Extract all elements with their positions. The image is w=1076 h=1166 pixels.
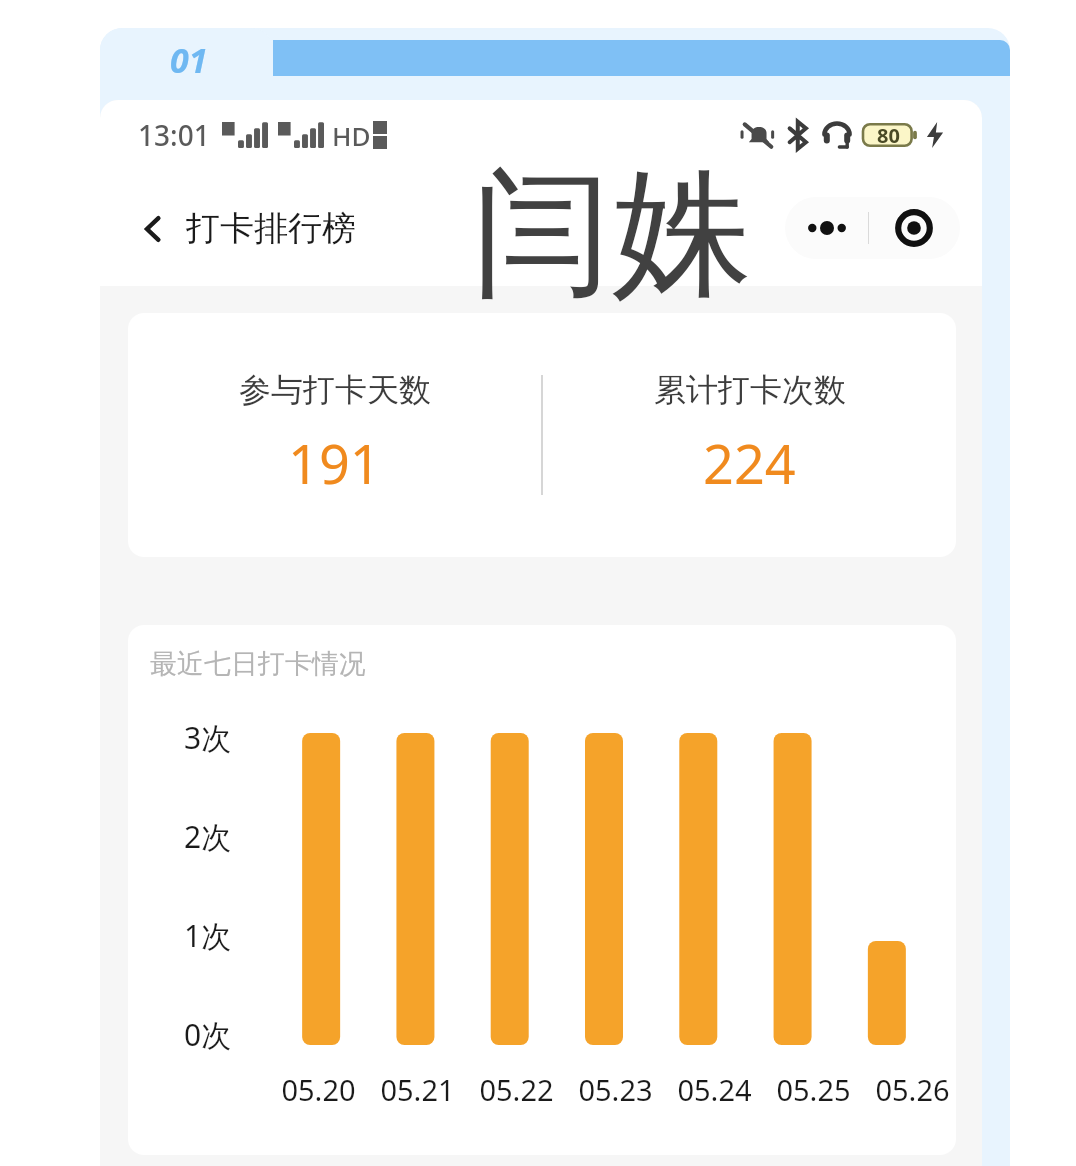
button[interactable]: 最近七日打卡情况 (128, 625, 956, 1155)
staticText: 参与打卡天数 (239, 370, 431, 410)
staticText: 05.26 (875, 1070, 950, 1109)
staticText: HD (332, 118, 371, 153)
staticText: 累计打卡次数 (654, 370, 846, 410)
staticText: 05.25 (776, 1070, 851, 1109)
staticText: 05.20 (281, 1070, 356, 1109)
other: Close (869, 197, 959, 259)
staticText: 191 (288, 426, 381, 500)
other: More (786, 197, 868, 259)
staticText: 3次 (184, 717, 232, 758)
other: Headset (822, 120, 852, 150)
staticText: 01 (170, 37, 208, 83)
staticText: 闫姝 (472, 146, 752, 322)
staticText: 2次 (184, 816, 232, 857)
staticText: 最近七日打卡情况 (150, 647, 366, 681)
staticText: 80 (877, 122, 900, 149)
button[interactable]: Back (124, 197, 370, 260)
staticText: 打卡排行榜 (186, 207, 356, 250)
staticText: 05.24 (677, 1070, 752, 1109)
staticText: 1次 (184, 915, 232, 956)
other: Muted (740, 121, 774, 149)
staticText: 13:01 (138, 116, 210, 154)
button[interactable]: 参与打卡天数 (128, 313, 956, 557)
staticText: 05.22 (479, 1070, 554, 1109)
staticText: 05.23 (578, 1070, 653, 1109)
other: Bluetooth (787, 120, 809, 150)
staticText: 224 (703, 426, 796, 500)
other: Back (138, 214, 168, 244)
staticText: 05.21 (380, 1070, 455, 1109)
button[interactable]: More (785, 197, 960, 259)
staticText: 0次 (184, 1014, 232, 1055)
